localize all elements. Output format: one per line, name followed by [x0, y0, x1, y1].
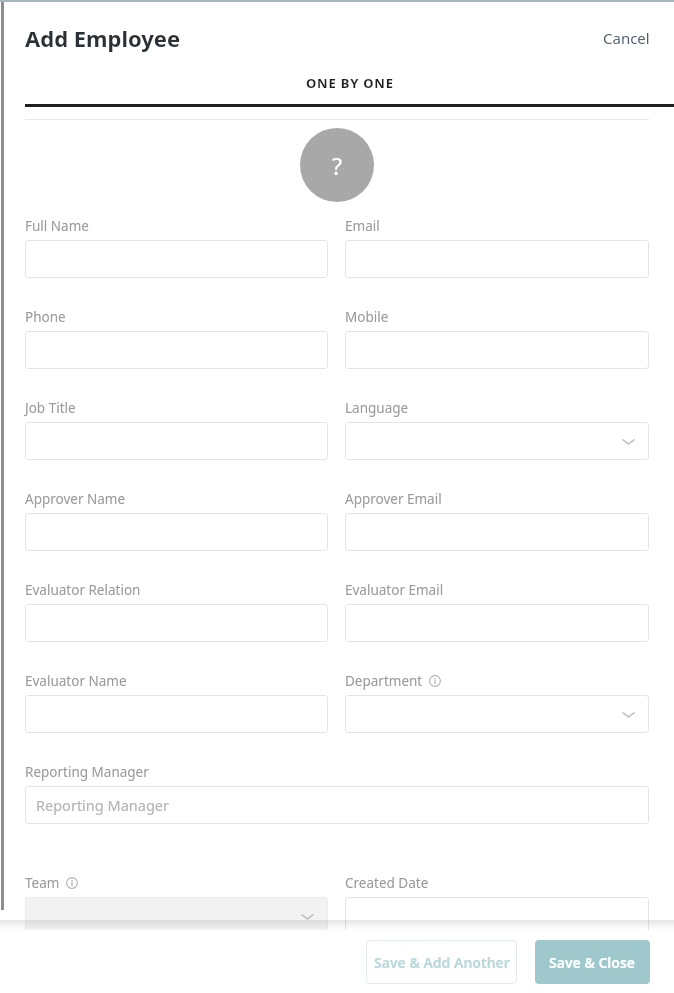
staticText: Job Title: [25, 399, 76, 417]
staticText: Department: [345, 672, 423, 690]
staticText: Approver Name: [25, 490, 126, 508]
staticText: ONE BY ONE: [306, 74, 394, 92]
staticText: Phone: [25, 308, 66, 326]
button[interactable]: [25, 695, 328, 733]
staticText: Approver Email: [345, 490, 442, 508]
staticText: Full Name: [25, 217, 89, 235]
button[interactable]: [25, 331, 328, 369]
staticText: Reporting Manager: [36, 795, 169, 815]
button[interactable]: [25, 513, 328, 551]
button[interactable]: Reporting Manager: [25, 786, 649, 824]
button[interactable]: Save & Add Another: [366, 940, 517, 984]
button[interactable]: [345, 513, 649, 551]
staticText: Language: [345, 399, 409, 417]
staticText: Reporting Manager: [25, 763, 149, 781]
button[interactable]: [345, 331, 649, 369]
staticText: Cancel: [603, 28, 650, 48]
button[interactable]: [25, 422, 328, 460]
staticText: Evaluator Email: [345, 581, 444, 599]
staticText: Save & Close: [549, 953, 636, 972]
staticText: Email: [345, 217, 380, 235]
staticText: Mobile: [345, 308, 389, 326]
button[interactable]: [25, 240, 328, 278]
button[interactable]: [25, 897, 328, 935]
staticText: Save & Add Another: [374, 953, 510, 972]
staticText: Team: [25, 874, 60, 892]
button[interactable]: [345, 604, 649, 642]
button[interactable]: [345, 240, 649, 278]
staticText: Evaluator Name: [25, 672, 127, 690]
button[interactable]: Cancel: [595, 22, 658, 54]
staticText: Evaluator Relation: [25, 581, 141, 599]
staticText: Created Date: [345, 874, 429, 892]
button[interactable]: Add photo: [300, 128, 374, 202]
button[interactable]: Save & Close: [535, 940, 650, 984]
button[interactable]: ONE BY ONE: [25, 74, 674, 107]
button[interactable]: [345, 897, 649, 935]
button[interactable]: [345, 695, 649, 733]
staticText: ?: [332, 150, 342, 181]
staticText: Add Employee: [25, 23, 181, 53]
button[interactable]: [25, 604, 328, 642]
button[interactable]: [345, 422, 649, 460]
